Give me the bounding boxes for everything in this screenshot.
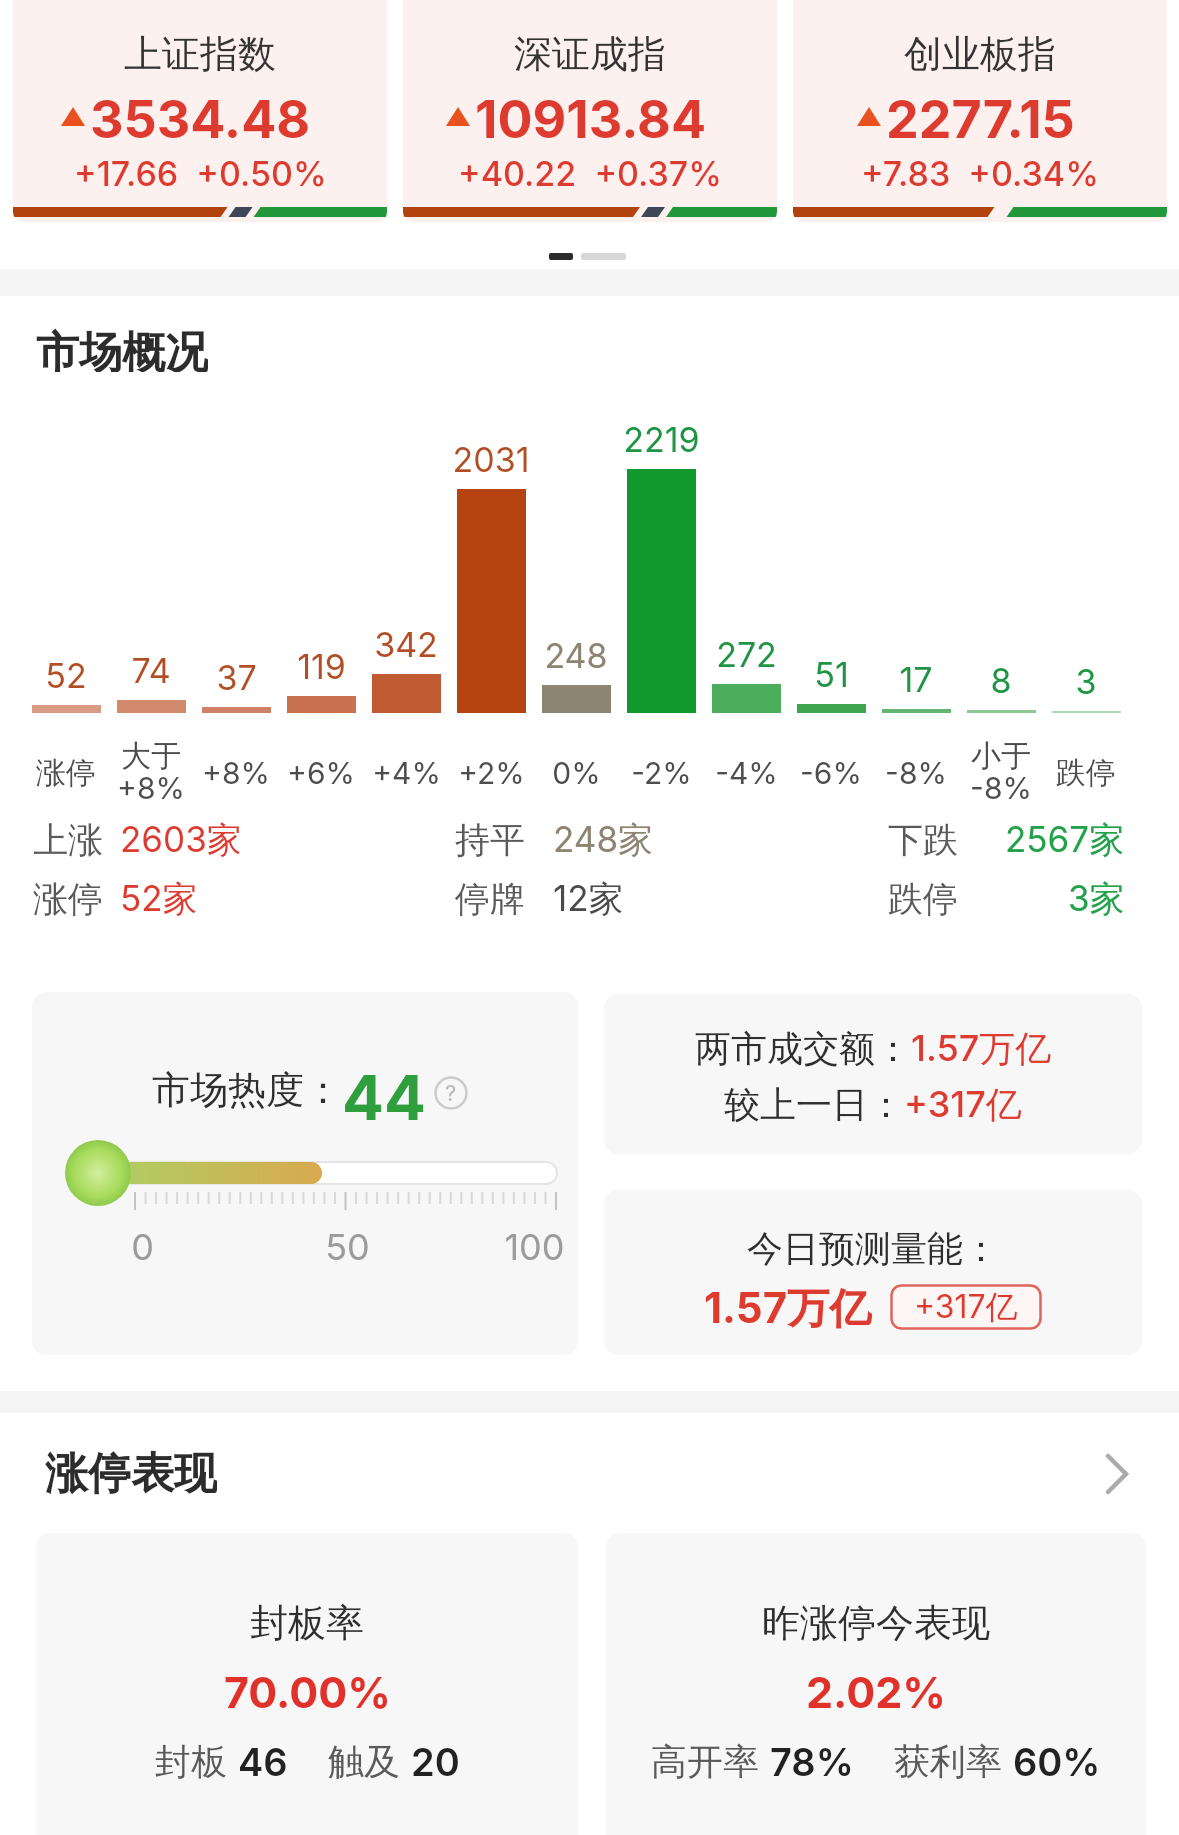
staticText: -2% [631, 755, 692, 791]
button[interactable] [1100, 1454, 1136, 1494]
staticText: 2031 [452, 439, 530, 479]
staticText: 涨停表现 [45, 1447, 217, 1497]
button[interactable]: 创业板指 [793, 0, 1167, 222]
staticText: 2219 [623, 419, 700, 459]
staticText: 2277.15 [886, 88, 1075, 144]
staticText: 昨涨停今表现 [762, 1599, 990, 1645]
staticText: +317亿 [914, 1287, 1018, 1328]
staticText: 248家 [553, 818, 654, 858]
staticText: +8% [202, 755, 270, 791]
staticText: 1.57万亿 [704, 1282, 872, 1332]
staticText: 37 [216, 657, 257, 697]
button[interactable]: 上证指数 [13, 0, 387, 222]
staticText: 3 [1075, 661, 1097, 701]
staticText: 大于 [121, 737, 181, 775]
staticText: +17.66 +0.50% [74, 153, 327, 194]
staticText: 70.00% [224, 1666, 391, 1718]
button[interactable]: 两市成交额： [604, 994, 1142, 1154]
staticText: +8% [117, 770, 185, 806]
staticText: +6% [287, 755, 355, 791]
staticText: 17 [899, 659, 933, 699]
staticText: 100 [504, 1225, 565, 1269]
button[interactable]: 昨涨停今表现 [606, 1533, 1146, 1835]
staticText: 高开率 [651, 1739, 770, 1785]
staticText: 较上一日： [724, 1082, 904, 1126]
button[interactable]: 深证成指 [403, 0, 777, 222]
staticText: 0 [131, 1225, 154, 1269]
button[interactable]: 今日预测量能： [604, 1190, 1142, 1355]
staticText: 2.02% [806, 1666, 946, 1718]
staticText: 持平 [455, 818, 525, 858]
staticText: 触及 [328, 1739, 411, 1785]
staticText: 3534.48 [90, 88, 311, 144]
staticText: -8% [970, 770, 1032, 806]
staticText: 停牌 [455, 877, 525, 917]
staticText: 上证指数 [124, 30, 276, 74]
staticText: 市场概况 [36, 326, 208, 372]
staticText: -4% [715, 755, 778, 791]
staticText: 创业板指 [904, 30, 1056, 74]
button[interactable]: 封板率 [36, 1533, 578, 1835]
staticText: +317亿 [904, 1082, 1022, 1126]
staticText: 119 [297, 646, 346, 686]
staticText: +7.83 +0.34% [861, 153, 1099, 194]
staticText: ? [445, 1080, 457, 1107]
staticText: 60% [1013, 1739, 1101, 1785]
staticText: 涨停 [33, 877, 103, 917]
staticText: 小于 [971, 737, 1031, 775]
staticText: 52 [45, 655, 87, 695]
staticText: 46 [238, 1739, 288, 1785]
staticText: 封板 [155, 1739, 238, 1785]
staticText: +4% [372, 755, 441, 791]
staticText: 12家 [553, 877, 624, 917]
staticText: 20 [411, 1739, 460, 1785]
staticText: 下跌 [888, 818, 958, 858]
staticText: 50 [325, 1225, 370, 1269]
staticText: +2% [458, 755, 525, 791]
staticText: 10913.84 [475, 88, 707, 144]
staticText: 44 [342, 1060, 426, 1120]
staticText: 两市成交额： [695, 1026, 911, 1070]
button[interactable]: 市场热度： [32, 992, 578, 1355]
staticText: 272 [716, 634, 777, 674]
staticText: 跌停 [1056, 754, 1116, 792]
staticText: 深证成指 [514, 30, 666, 74]
staticText: 涨停 [36, 754, 96, 792]
staticText: 市场热度： [152, 1066, 342, 1114]
staticText: 1.57万亿 [911, 1026, 1052, 1070]
staticText: +40.22 +0.37% [458, 153, 723, 194]
staticText: 3家 [1068, 877, 1125, 917]
staticText: 今日预测量能： [747, 1226, 999, 1270]
staticText: 跌停 [888, 877, 958, 917]
staticText: 封板率 [250, 1599, 364, 1645]
staticText: -8% [885, 755, 947, 791]
staticText: 获利率 [894, 1739, 1013, 1785]
staticText: 248 [544, 635, 608, 675]
staticText: 52家 [120, 877, 198, 917]
staticText: 2567家 [1005, 818, 1125, 858]
staticText: 上涨 [33, 818, 103, 858]
staticText: 78% [770, 1739, 854, 1785]
staticText: 51 [814, 654, 849, 694]
staticText: 74 [131, 650, 171, 690]
staticText: -6% [800, 755, 862, 791]
staticText: 8 [990, 660, 1012, 700]
staticText: 2603家 [120, 818, 242, 858]
staticText: 342 [374, 624, 438, 664]
staticText: 0% [552, 755, 601, 791]
